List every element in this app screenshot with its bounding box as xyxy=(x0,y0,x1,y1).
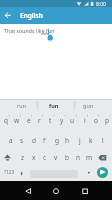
button[interactable] xyxy=(21,184,35,198)
button[interactable]: j xyxy=(0,0,11,12)
staticText: j xyxy=(79,136,81,145)
button[interactable]: c xyxy=(0,0,11,12)
button[interactable]: gun xyxy=(0,0,30,10)
button[interactable]: run xyxy=(0,0,30,10)
staticText: k xyxy=(89,136,93,145)
button[interactable]: y xyxy=(0,0,11,12)
staticText: m xyxy=(86,153,93,162)
staticText: c xyxy=(43,153,47,162)
staticText: t xyxy=(49,116,52,125)
button[interactable]: q xyxy=(0,0,11,12)
button[interactable]: b xyxy=(0,0,11,12)
staticText: gun xyxy=(83,102,94,109)
staticText: z xyxy=(21,153,25,162)
staticText: e xyxy=(27,116,31,125)
button[interactable] xyxy=(78,184,92,198)
button[interactable]: h xyxy=(0,0,11,12)
staticText: That sounds like fun xyxy=(4,28,55,35)
staticText: d xyxy=(32,136,36,145)
staticText: b xyxy=(65,153,69,162)
staticText: l xyxy=(102,136,104,145)
staticText: h xyxy=(65,136,70,145)
button[interactable]: m xyxy=(0,0,11,12)
button[interactable]: t xyxy=(0,0,11,12)
staticText: w xyxy=(14,116,20,125)
button[interactable]: a xyxy=(0,0,11,12)
staticText: run xyxy=(17,102,27,109)
button[interactable]: w xyxy=(0,0,11,12)
button[interactable]: r xyxy=(0,0,11,12)
button[interactable]: z xyxy=(0,0,11,12)
button[interactable]: p xyxy=(0,0,11,12)
button[interactable]: i xyxy=(0,0,11,12)
staticText: y xyxy=(60,116,64,125)
button[interactable]: l xyxy=(0,0,11,12)
staticText: o xyxy=(94,116,98,125)
button[interactable]: u xyxy=(0,0,11,12)
staticText: p xyxy=(105,116,109,125)
staticText: ?123 xyxy=(4,169,15,176)
staticText: g xyxy=(55,136,59,145)
button[interactable]: e xyxy=(0,0,11,12)
staticText: i xyxy=(84,116,86,125)
button[interactable]: fun xyxy=(0,0,30,10)
button[interactable]: s xyxy=(0,0,11,12)
button[interactable]: x xyxy=(0,0,11,12)
button[interactable] xyxy=(17,166,26,178)
button[interactable] xyxy=(49,184,63,198)
button[interactable] xyxy=(84,166,93,178)
button[interactable]: v xyxy=(0,0,11,12)
staticText: v xyxy=(54,153,58,162)
staticText: n xyxy=(76,153,81,162)
button[interactable] xyxy=(0,7,112,24)
staticText: English xyxy=(20,11,43,20)
staticText: u xyxy=(70,116,75,125)
button[interactable]: f xyxy=(0,0,11,12)
staticText: s xyxy=(20,136,24,145)
staticText: q xyxy=(4,116,8,125)
button[interactable]: d xyxy=(0,0,11,12)
staticText: r xyxy=(38,116,41,125)
button[interactable] xyxy=(97,167,108,178)
staticText: a xyxy=(9,136,13,145)
staticText: x xyxy=(32,153,36,162)
button[interactable]: n xyxy=(0,0,11,12)
staticText: fun xyxy=(49,102,59,109)
button[interactable]: o xyxy=(0,0,11,12)
staticText: f xyxy=(43,136,46,145)
button[interactable]: ?123 xyxy=(0,0,16,10)
button[interactable]: g xyxy=(0,0,11,12)
staticText: 8:00 xyxy=(96,1,106,8)
button[interactable]: k xyxy=(0,0,11,12)
